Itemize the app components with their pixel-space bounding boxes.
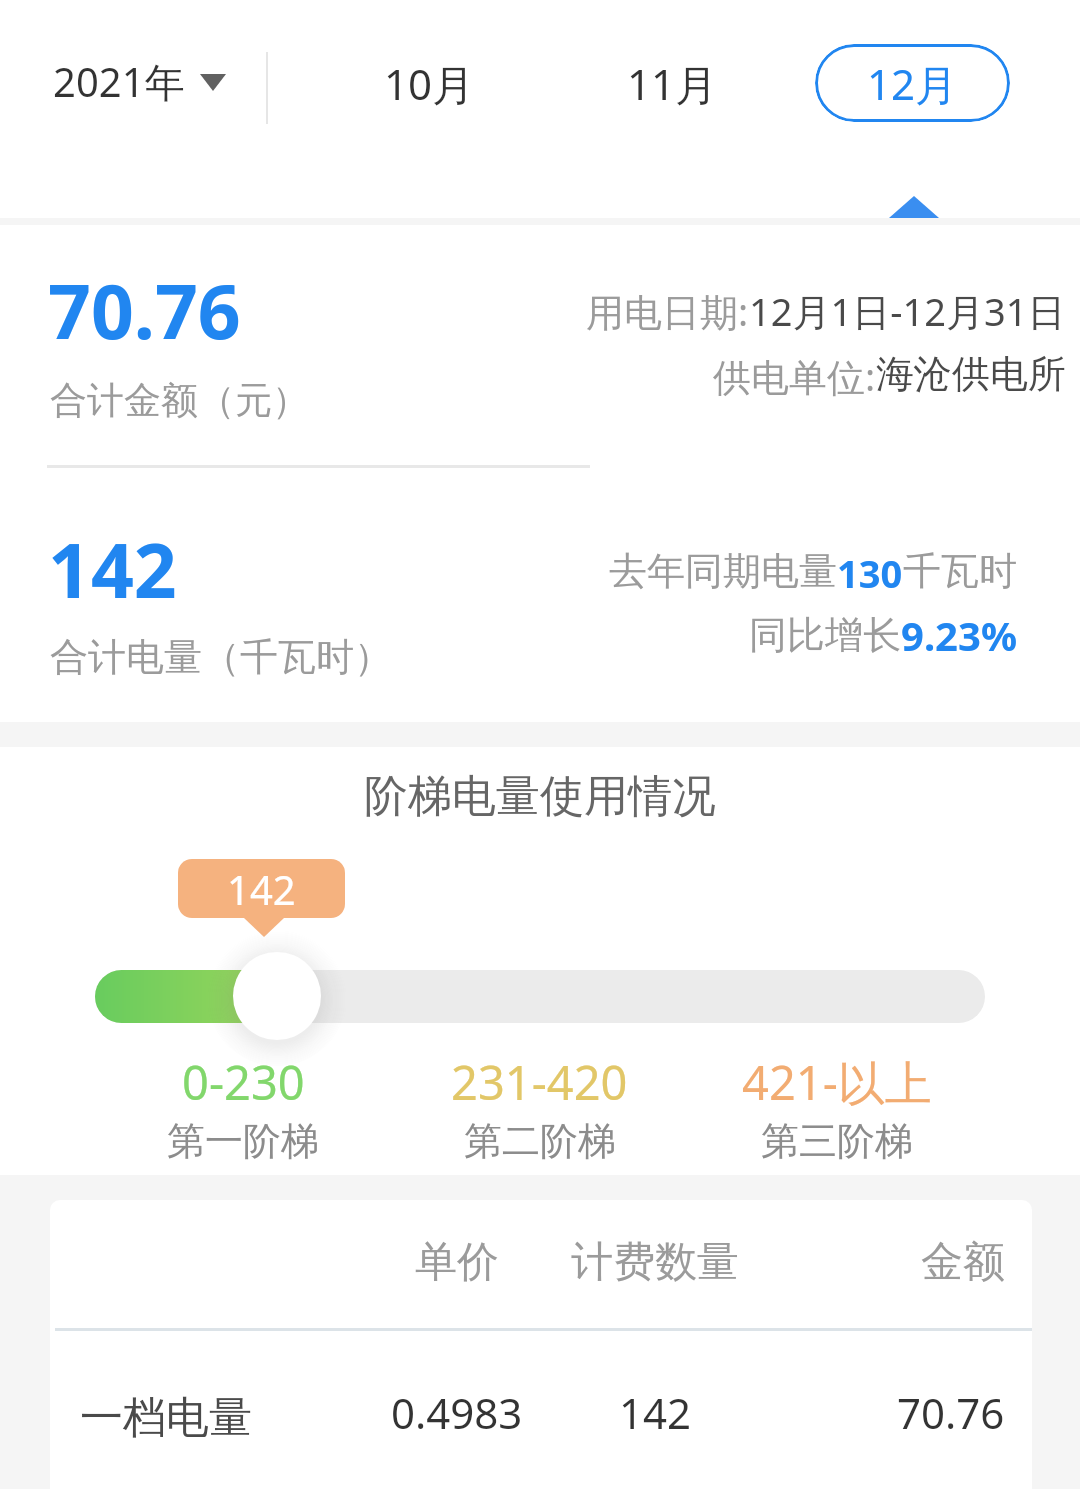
staticText: 供电单位:: [713, 350, 876, 402]
staticText: 第三阶梯: [761, 1117, 913, 1165]
staticText: 0-230: [182, 1050, 305, 1114]
staticText: 11月: [627, 55, 718, 112]
staticText: 231-420: [451, 1050, 628, 1114]
staticText: 用电日期:: [586, 285, 749, 337]
staticText: 10月: [384, 55, 475, 112]
button[interactable]: 12月: [815, 44, 1010, 122]
staticText: 2021年: [53, 54, 185, 109]
staticText: 142: [227, 862, 296, 916]
staticText: 金额: [921, 1236, 1005, 1289]
staticText: 130: [837, 547, 903, 599]
staticText: 421-以上: [742, 1050, 932, 1114]
staticText: 海沧供电所: [876, 350, 1066, 398]
staticText: 同比增长: [749, 611, 901, 659]
staticText: 去年同期电量: [609, 547, 837, 595]
button[interactable]: 11月: [612, 46, 732, 120]
button[interactable]: 2021年: [40, 44, 240, 119]
staticText: 142: [619, 1384, 692, 1441]
staticText: 9.23%: [901, 608, 1017, 662]
button[interactable]: 一档电量: [50, 1391, 1032, 1445]
staticText: 一档电量: [80, 1391, 252, 1445]
staticText: 计费数量: [571, 1236, 739, 1289]
staticText: 合计金额（元）: [50, 377, 309, 424]
staticText: 12月: [867, 55, 958, 112]
button[interactable]: 10月: [369, 46, 489, 120]
staticText: 70.76: [48, 259, 241, 361]
staticText: 第二阶梯: [464, 1117, 616, 1165]
staticText: 0.4983: [391, 1384, 523, 1441]
staticText: 70.76: [897, 1384, 1005, 1441]
staticText: 142: [48, 518, 177, 620]
staticText: 千瓦时: [903, 547, 1017, 595]
staticText: 12月1日-12月31日: [749, 285, 1066, 337]
button[interactable]: [233, 952, 321, 1040]
staticText: 单价: [415, 1236, 499, 1289]
staticText: 第一阶梯: [167, 1117, 319, 1165]
staticText: 合计电量（千瓦时）: [50, 633, 392, 681]
staticText: 阶梯电量使用情况: [364, 769, 716, 824]
